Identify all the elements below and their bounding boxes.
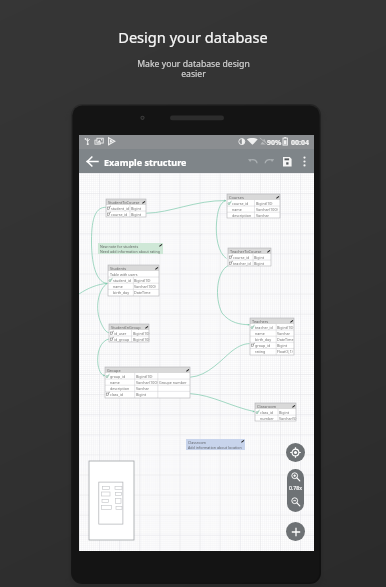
staticText: Bigint [277,343,288,348]
staticText: Make your database design easier [137,58,250,80]
staticText: course_id [232,201,249,206]
staticText: DateTime [277,337,294,342]
staticText: group_id [110,374,126,379]
button[interactable]: Groupe [105,367,190,398]
staticText: Groupe number [159,380,187,385]
button[interactable]: Minimap [89,461,134,540]
staticText: class_id [260,410,274,415]
staticText: Teachers [252,319,269,324]
staticText: StudentToCourse [108,200,140,205]
staticText: birth_day [113,290,130,295]
staticText: Table with users [110,272,138,277]
staticText: number [260,416,274,421]
button[interactable]: Center view [286,443,305,462]
button[interactable]: Teachers [250,318,294,355]
staticText: Bigint [131,206,142,211]
staticText: Bigint [254,261,265,266]
staticText: name [232,207,242,212]
staticText: Varchar [277,331,291,336]
staticText: Bigint [254,255,265,260]
button[interactable]: Zoom out [287,491,304,512]
staticText: Bigint(10) [277,325,294,330]
staticText: rating [255,349,266,354]
staticText: Need add information about rating [100,249,160,254]
staticText: Classroom [257,404,277,409]
staticText: id_group [114,337,130,342]
staticText: Students [110,266,127,271]
staticText: StudentInGroup [111,325,141,330]
staticText: TeacherToCourse [230,249,262,254]
button[interactable]: Save [277,149,297,173]
staticText: 00:04 [291,138,309,148]
staticText: Varchar [256,213,270,218]
staticText: Add information about location [188,445,242,450]
staticText: DateTime [134,290,151,295]
staticText: Float(3,1) [277,349,293,354]
button[interactable]: Courses [227,194,280,218]
staticText: teacher_id [233,261,251,266]
staticText: Example structure [104,156,187,168]
staticText: Varchar(100) [134,284,156,289]
button[interactable]: TeacherToCourse [228,248,271,266]
staticText: Classroom [188,440,207,445]
staticText: description [110,386,130,391]
staticText: Varchar(100) [256,207,278,212]
staticText: student_id [111,206,129,211]
staticText: Groupe [107,368,121,373]
staticText: description [232,213,252,218]
staticText: class_id [110,392,124,397]
staticText: New note for students [100,244,139,249]
button[interactable]: Undo [242,149,262,173]
button[interactable]: StudentToCourse [106,199,146,217]
button[interactable]: New note for students [98,243,163,254]
button[interactable]: More options [295,149,313,173]
staticText: name [113,284,123,289]
staticText: Bigint(10) [133,337,150,342]
staticText: group_id [255,343,271,348]
staticText: Bigint [279,410,290,415]
staticText: name [255,331,265,336]
staticText: teacher_id [255,325,273,330]
staticText: Varchar [136,386,150,391]
staticText: id_user [114,331,127,336]
button[interactable]: Zoom in [287,469,304,484]
staticText: Courses [229,195,244,200]
staticText: Bigint(10) [133,331,150,336]
staticText: course_id [111,212,128,217]
staticText: Bigint [136,392,147,397]
staticText: Bigint [131,212,142,217]
button[interactable]: Redo [259,149,279,173]
button[interactable]: StudentInGroup [109,324,149,342]
staticText: Bigint(10) [134,278,151,283]
staticText: course_id [233,255,250,260]
staticText: Bigint(10) [256,201,273,206]
staticText: 90% [267,138,282,148]
button[interactable]: Classroom [186,439,245,450]
staticText: Bigint(10) [136,374,153,379]
staticText: name [110,380,120,385]
staticText: Design your database [118,27,268,47]
staticText: 0.78x [289,484,303,491]
button[interactable]: Back [81,149,103,173]
staticText: student_id [113,278,131,283]
staticText: Varchar(100) [136,380,158,385]
button[interactable]: Students [108,265,159,296]
staticText: Varchar(5) [279,416,297,421]
button[interactable]: Add table [286,522,305,541]
staticText: birth_day [255,337,272,342]
button[interactable]: Classroom [255,403,296,421]
